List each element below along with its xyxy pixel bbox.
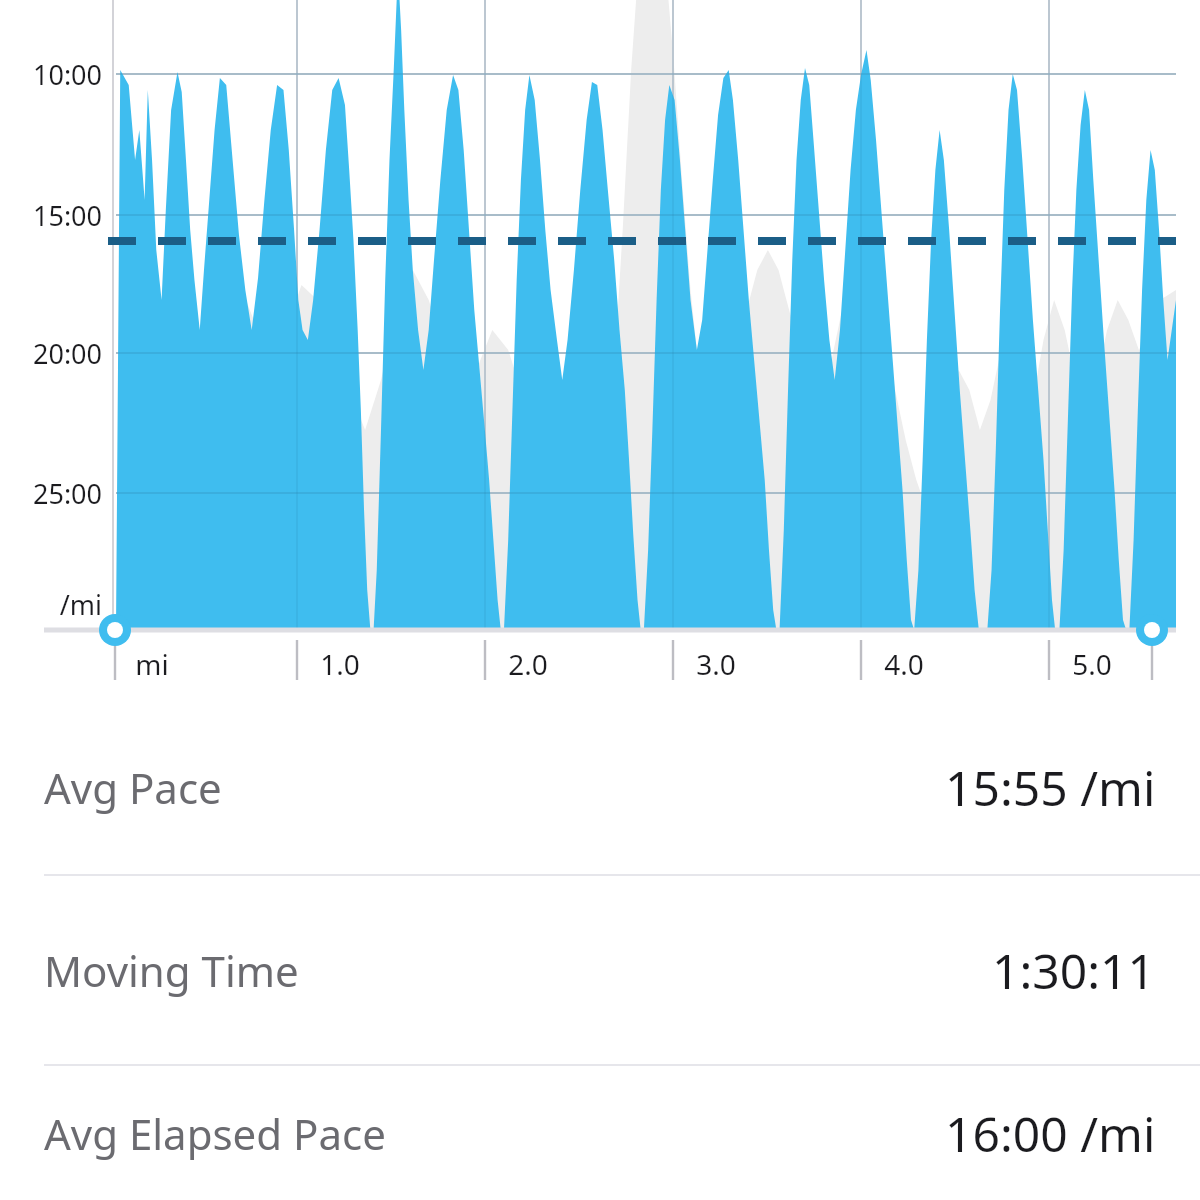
staticText: Avg Elapsed Pace [44,1105,386,1162]
staticText: 15:00 [10,197,102,234]
staticText: 1:30:11 [992,938,1156,1003]
staticText: Avg Pace [44,759,222,816]
staticText: 2.0 [478,645,578,683]
staticText: 15:55 /mi [945,755,1156,820]
staticText: 1.0 [290,645,390,683]
button[interactable]: Avg Pace [0,700,1200,874]
staticText: Moving Time [44,942,299,999]
button[interactable]: Moving Time [0,876,1200,1064]
staticText: 20:00 [10,335,102,372]
staticText: 4.0 [854,645,954,683]
staticText: 25:00 [10,475,102,512]
staticText: 5.0 [1042,645,1142,683]
staticText: /mi [10,586,102,623]
button[interactable]: Avg Elapsed Pace [0,1066,1200,1200]
staticText: mi [102,645,202,683]
staticText: 10:00 [10,56,102,93]
staticText: 3.0 [666,645,766,683]
staticText: 16:00 /mi [945,1101,1156,1166]
